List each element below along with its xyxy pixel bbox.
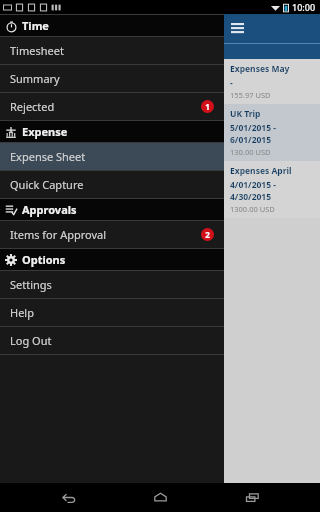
- button[interactable]: Expenses April: [224, 161, 320, 218]
- staticText: Rejected: [10, 99, 55, 114]
- staticText: Options: [22, 252, 66, 267]
- button[interactable]: Expenses May: [224, 59, 320, 104]
- button[interactable]: Help: [0, 299, 224, 326]
- staticText: Quick Capture: [10, 177, 84, 192]
- staticText: 1300.00 USD: [230, 204, 275, 214]
- button[interactable]: Recent apps: [228, 483, 276, 512]
- staticText: Expenses April: [230, 165, 292, 177]
- staticText: Expenses May: [230, 63, 290, 75]
- button[interactable]: Quick Capture: [0, 171, 224, 198]
- button[interactable]: Settings: [0, 271, 224, 298]
- button[interactable]: Back: [44, 483, 92, 512]
- button[interactable]: Items for Approval: [0, 221, 224, 248]
- staticText: Time: [22, 18, 49, 33]
- staticText: -: [230, 77, 233, 89]
- staticText: 155.97 USD: [230, 90, 271, 100]
- button[interactable]: Open navigation menu: [224, 14, 320, 43]
- staticText: Help: [10, 305, 34, 320]
- button[interactable]: Options: [0, 249, 224, 270]
- staticText: Items for Approval: [10, 227, 107, 242]
- staticText: UK Trip: [230, 108, 261, 120]
- staticText: 1: [205, 101, 210, 112]
- staticText: 5/01/2015 - 6/01/2015: [230, 122, 316, 146]
- staticText: Settings: [10, 277, 52, 292]
- staticText: Expense Sheet: [10, 149, 86, 164]
- staticText: 130.00 USD: [230, 147, 271, 157]
- button[interactable]: Expense Sheet: [0, 143, 224, 170]
- button[interactable]: Home: [136, 483, 184, 512]
- staticText: 4/01/2015 - 4/30/2015: [230, 179, 316, 203]
- button[interactable]: Expense: [0, 121, 224, 142]
- button[interactable]: Time: [0, 15, 224, 36]
- button[interactable]: Log Out: [0, 327, 224, 354]
- button[interactable]: Approvals: [0, 199, 224, 220]
- staticText: Expense: [22, 124, 68, 139]
- staticText: Summary: [10, 71, 60, 86]
- staticText: Approvals: [22, 202, 77, 217]
- staticText: Log Out: [10, 333, 52, 348]
- button[interactable]: Summary: [0, 65, 224, 92]
- button[interactable]: Rejected: [0, 93, 224, 120]
- staticText: 10:00: [292, 1, 316, 13]
- button[interactable]: Timesheet: [0, 37, 224, 64]
- button[interactable]: UK Trip: [224, 104, 320, 161]
- staticText: Timesheet: [10, 43, 64, 58]
- staticText: 2: [205, 229, 210, 240]
